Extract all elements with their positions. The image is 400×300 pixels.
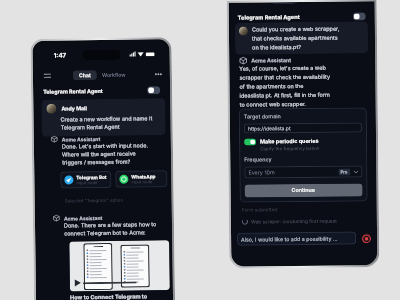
button[interactable]: Toggle agent — [147, 86, 160, 94]
staticText: Chat — [79, 72, 91, 78]
staticText: Workflow — [102, 72, 126, 78]
staticText: Continue — [292, 187, 316, 194]
staticText: Acme Assistant — [62, 136, 101, 142]
button[interactable]: https://idealista.pt — [244, 122, 362, 134]
staticText: Telegram Rental Agent — [238, 14, 300, 22]
staticText: Acme Assistant — [64, 215, 103, 221]
staticText: Could you create a web scrapper, that ch… — [252, 25, 364, 51]
button[interactable]: Every 10m — [244, 165, 362, 179]
staticText: Selected "Telegram" option — [65, 198, 124, 203]
button[interactable]: Record — [361, 233, 371, 243]
staticText: Frequency — [244, 156, 272, 164]
button[interactable]: Play video — [69, 240, 170, 291]
staticText: Pro — [340, 169, 348, 175]
staticText: https://idealista.pt — [248, 125, 291, 131]
staticText: Also, I would like to add a possibility … — [241, 236, 338, 243]
button[interactable]: Continue — [244, 183, 363, 198]
staticText: Web scraper: conducting first request — [251, 218, 337, 224]
staticText: input node — [131, 179, 153, 185]
button[interactable]: WhatsApp — [115, 170, 167, 188]
staticText: Acme Assistant — [251, 57, 291, 63]
staticText: Telegram Bot — [76, 174, 107, 180]
staticText: Done. Let's start with input node. Where… — [62, 142, 149, 167]
button[interactable]: More options — [153, 69, 163, 79]
button[interactable]: Chat — [272, 3, 297, 4]
button[interactable]: Toggle agent — [353, 12, 366, 20]
staticText: Telegram Rental Agent — [43, 88, 103, 96]
button[interactable]: Workflow — [97, 70, 131, 80]
staticText: Yes, of course, let's create a web scrap… — [239, 65, 331, 108]
staticText: Every 10m — [248, 169, 275, 177]
button[interactable]: Telegram Bot — [60, 171, 111, 189]
staticText: Done. There are a few steps how to conne… — [64, 221, 157, 237]
staticText: Form submitted — [242, 206, 278, 213]
button[interactable]: Also, I would like to add a possibility … — [237, 231, 356, 246]
staticText: Andy Mall — [61, 105, 87, 112]
staticText: WhatsApp — [131, 173, 156, 180]
staticText: Target domain — [244, 113, 281, 121]
staticText: Clarify the frequency below — [260, 146, 319, 151]
button[interactable]: Menu — [42, 71, 52, 81]
staticText: How to Connect Telegram to — [70, 293, 148, 300]
button[interactable]: Chat — [73, 70, 97, 80]
button[interactable]: Periodic queries — [244, 138, 256, 146]
staticText: input node — [76, 180, 98, 185]
staticText: Create a new workflow and name it Telegr… — [60, 115, 162, 132]
staticText: Make periodic queries — [260, 138, 319, 145]
staticText: 1:47 — [54, 51, 67, 60]
